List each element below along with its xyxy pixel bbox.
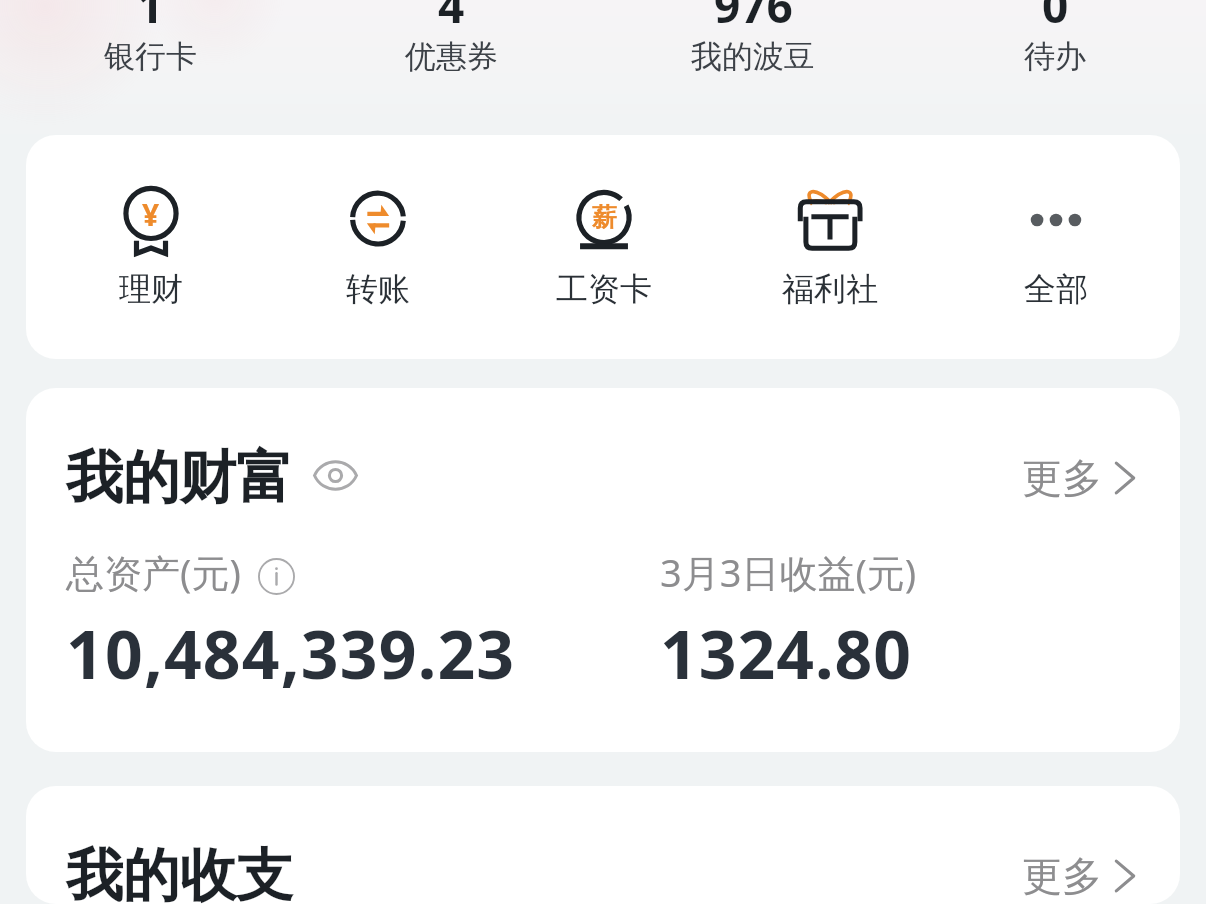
staticText: 我的波豆 [691, 37, 815, 76]
staticText: 理财 [119, 269, 183, 309]
button[interactable]: Total assets information [257, 557, 296, 596]
staticText: 我的财富 [66, 442, 293, 514]
button[interactable]: 全部 [943, 135, 1169, 359]
staticText: 优惠券 [405, 37, 498, 76]
staticText: 更多 [1022, 453, 1102, 503]
button[interactable]: 福利社 [717, 135, 943, 359]
staticText: 总资产(元) [66, 546, 241, 598]
staticText: ¥ [142, 194, 160, 235]
staticText: 银行卡 [104, 37, 197, 76]
button[interactable]: 0 [904, 0, 1206, 76]
staticText: 工资卡 [556, 269, 652, 309]
button[interactable]: 更多 [1022, 851, 1138, 901]
staticText: 1 [137, 0, 164, 37]
button[interactable]: 976 [602, 0, 904, 76]
staticText: 3月3日收益(元) [660, 546, 917, 598]
staticText: 薪 [592, 202, 617, 233]
staticText: 福利社 [782, 269, 878, 309]
button[interactable]: 薪 [491, 135, 717, 359]
staticText: 10,484,339.23 [66, 608, 516, 698]
staticText: 更多 [1022, 851, 1102, 901]
staticText: 4 [438, 0, 465, 37]
staticText: 976 [714, 0, 793, 37]
staticText: 我的收支 [66, 840, 293, 904]
staticText: 转账 [346, 269, 410, 309]
button[interactable]: 4 [301, 0, 602, 76]
button[interactable]: ¥ [37, 135, 264, 359]
button[interactable]: 更多 [1022, 453, 1138, 503]
button[interactable]: Toggle balance visibility [313, 459, 358, 492]
staticText: 待办 [1024, 37, 1086, 76]
staticText: 1324.80 [660, 608, 913, 698]
button[interactable]: 1 [0, 0, 301, 76]
staticText: 全部 [1024, 269, 1088, 309]
button[interactable]: 转账 [264, 135, 491, 359]
staticText: 0 [1042, 0, 1069, 37]
